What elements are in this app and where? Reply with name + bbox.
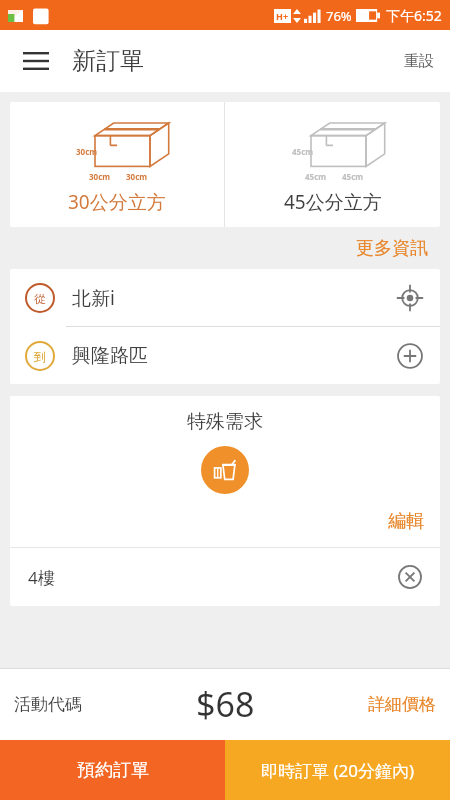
button[interactable]: 4樓 [10, 548, 440, 606]
staticText: H+ [276, 10, 289, 22]
staticText: 新訂單 [72, 46, 144, 76]
button[interactable]: 30cm [10, 102, 224, 227]
staticText: 45cm [305, 171, 327, 182]
staticText: 76% [326, 7, 352, 25]
button[interactable]: 45cm [225, 102, 440, 227]
button[interactable]: 編輯 [372, 504, 440, 539]
button[interactable]: Use current location [386, 274, 434, 322]
staticText: 30cm [76, 146, 98, 157]
staticText: 30公分立方 [68, 189, 166, 215]
staticText: 北新i [72, 285, 386, 311]
staticText: 詳細價格 [368, 694, 436, 715]
button[interactable]: Add destination [386, 332, 434, 380]
button[interactable]: 即時訂單 (20分鐘內) [225, 740, 450, 800]
button[interactable]: 更多資訊 [350, 231, 434, 266]
staticText: 活動代碼 [14, 694, 82, 715]
button[interactable]: Clear [386, 553, 434, 601]
staticText: 4樓 [28, 566, 386, 589]
staticText: 45cm [292, 146, 314, 157]
staticText: 即時訂單 (20分鐘內) [261, 759, 415, 782]
staticText: 45公分立方 [284, 189, 382, 215]
button[interactable]: Menu [14, 39, 58, 83]
staticText: 到 [34, 349, 46, 364]
staticText: 編輯 [388, 510, 424, 533]
staticText: 從 [34, 291, 46, 306]
button[interactable]: Food and drink [201, 446, 249, 494]
staticText: 30cm [126, 171, 148, 182]
button[interactable]: 到 [10, 327, 440, 384]
staticText: 興隆路匹 [72, 344, 386, 368]
staticText: $68 [196, 681, 255, 727]
button[interactable]: 重設 [388, 40, 450, 83]
staticText: 下午6:52 [386, 6, 442, 25]
staticText: 45cm [342, 171, 364, 182]
button[interactable]: 從 [10, 269, 440, 326]
button[interactable]: 詳細價格 [354, 682, 450, 727]
button[interactable]: 預約訂單 [0, 740, 225, 800]
staticText: 30cm [89, 171, 111, 182]
staticText: 更多資訊 [356, 237, 428, 260]
staticText: 預約訂單 [77, 759, 149, 782]
staticText: 重設 [404, 52, 434, 71]
staticText: 特殊需求 [10, 410, 440, 434]
button[interactable]: 活動代碼 [0, 682, 96, 727]
